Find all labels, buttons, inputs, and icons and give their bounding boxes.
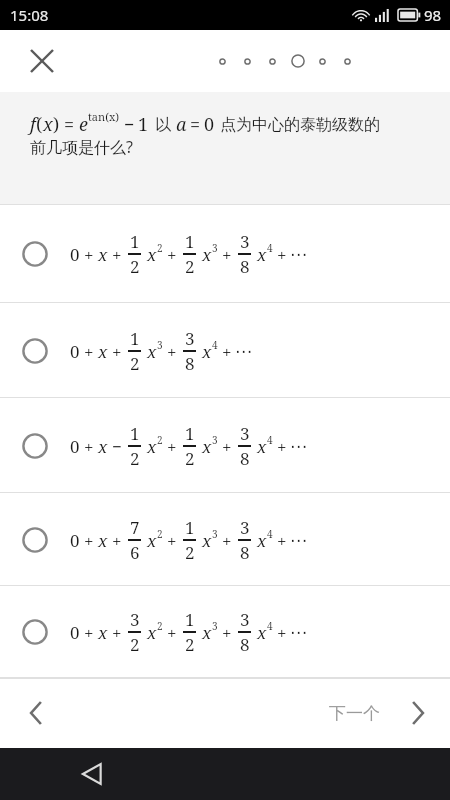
staticText: 0 xyxy=(70,435,80,458)
staticText: ⋯ xyxy=(290,530,307,550)
staticText: 0 xyxy=(70,340,80,363)
staticText: + xyxy=(112,529,122,552)
button[interactable]: 下一个 xyxy=(321,695,388,732)
staticText: + xyxy=(84,243,94,266)
staticText: 8 xyxy=(240,255,250,278)
button[interactable]: Back xyxy=(70,752,114,796)
staticText: + xyxy=(277,243,287,266)
staticText: 3 xyxy=(130,608,140,631)
staticText: 3 xyxy=(212,241,218,255)
staticText: 1 xyxy=(130,327,140,350)
staticText: + xyxy=(84,621,94,644)
staticText: 2 xyxy=(130,447,140,470)
staticText: x xyxy=(98,435,108,458)
staticText: ( xyxy=(36,112,43,137)
staticText: 0 xyxy=(70,243,80,266)
staticText: + xyxy=(167,340,177,363)
staticText: 3 xyxy=(212,433,218,447)
staticText: 8 xyxy=(240,447,250,470)
button[interactable]: 0 xyxy=(0,205,450,303)
staticText: + xyxy=(84,340,94,363)
staticText: ⋯ xyxy=(290,436,307,456)
button[interactable]: 0 xyxy=(0,303,450,398)
staticText: + xyxy=(222,529,232,552)
staticText: ) xyxy=(53,112,60,137)
button[interactable]: Close xyxy=(20,39,64,83)
staticText: 2 xyxy=(157,433,163,447)
staticText: 以 xyxy=(155,115,171,135)
staticText: 2 xyxy=(130,352,140,375)
staticText: x xyxy=(98,340,108,363)
staticText: 3 xyxy=(240,422,250,445)
staticText: 98 xyxy=(424,5,442,25)
staticText: + xyxy=(277,435,287,458)
staticText: = xyxy=(64,112,75,137)
staticText: 3 xyxy=(185,327,195,350)
staticText: + xyxy=(112,243,122,266)
staticText: x xyxy=(147,340,157,363)
staticText: + xyxy=(112,340,122,363)
button[interactable]: Previous xyxy=(14,691,58,735)
staticText: + xyxy=(167,529,177,552)
staticText: 2 xyxy=(157,527,163,541)
staticText: x xyxy=(257,243,267,266)
staticText: + xyxy=(222,435,232,458)
staticText: 4 xyxy=(212,338,218,352)
staticText: 15:08 xyxy=(10,5,49,25)
staticText: x xyxy=(257,435,267,458)
staticText: 下一个 xyxy=(329,703,380,724)
staticText: − xyxy=(112,435,122,458)
staticText: x xyxy=(98,621,108,644)
staticText: x xyxy=(98,243,108,266)
staticText: + xyxy=(222,621,232,644)
staticText: x xyxy=(202,435,212,458)
staticText: 1 xyxy=(185,516,195,539)
staticText: x xyxy=(147,435,157,458)
staticText: 2 xyxy=(185,541,195,564)
staticText: e xyxy=(79,112,88,137)
button[interactable]: 0 xyxy=(0,586,450,678)
staticText: = xyxy=(190,112,201,137)
staticText: + xyxy=(277,529,287,552)
staticText: 3 xyxy=(212,619,218,633)
staticText: x xyxy=(147,529,157,552)
staticText: ⋯ xyxy=(290,244,307,264)
staticText: + xyxy=(222,243,232,266)
staticText: x xyxy=(202,529,212,552)
staticText: + xyxy=(112,621,122,644)
staticText: 0 xyxy=(70,621,80,644)
staticText: 4 xyxy=(267,241,273,255)
staticText: f xyxy=(30,112,36,137)
staticText: 1 xyxy=(130,422,140,445)
staticText: 2 xyxy=(185,447,195,470)
staticText: x xyxy=(202,621,212,644)
staticText: x xyxy=(147,621,157,644)
staticText: 7 xyxy=(130,516,140,539)
staticText: + xyxy=(84,529,94,552)
staticText: 2 xyxy=(157,241,163,255)
button[interactable]: 0 xyxy=(0,398,450,493)
staticText: + xyxy=(167,435,177,458)
staticText: 3 xyxy=(212,527,218,541)
staticText: 1 xyxy=(185,422,195,445)
staticText: x xyxy=(147,243,157,266)
staticText: 0 xyxy=(204,112,215,137)
staticText: 前几项是什么? xyxy=(30,136,133,158)
staticText: + xyxy=(277,621,287,644)
staticText: − xyxy=(124,112,135,137)
staticText: x xyxy=(43,112,53,137)
button[interactable]: 0 xyxy=(0,493,450,586)
staticText: 2 xyxy=(185,633,195,656)
staticText: tan(x) xyxy=(88,109,120,124)
staticText: 2 xyxy=(185,255,195,278)
staticText: 8 xyxy=(240,633,250,656)
button[interactable]: Next xyxy=(398,693,438,733)
staticText: x xyxy=(257,621,267,644)
staticText: 3 xyxy=(240,516,250,539)
staticText: 3 xyxy=(240,230,250,253)
staticText: + xyxy=(222,340,232,363)
staticText: 2 xyxy=(130,255,140,278)
staticText: + xyxy=(84,435,94,458)
staticText: 0 xyxy=(70,529,80,552)
staticText: 3 xyxy=(157,338,163,352)
